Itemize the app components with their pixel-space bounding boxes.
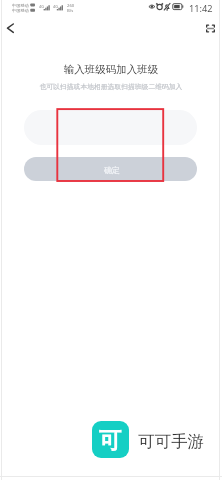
staticText: 也可以扫描或本地相册选取扫描班级二维码加入 (0, 82, 222, 91)
staticText: 确定 (104, 165, 120, 175)
button[interactable]: Back (0, 17, 22, 39)
staticText: 可 (99, 426, 122, 454)
staticText: 中国移动 (12, 8, 29, 13)
staticText: 中国移动 (12, 3, 29, 8)
staticText: 11:42 (189, 2, 213, 15)
staticText: 4G (39, 4, 44, 9)
staticText: 输入班级码加入班级 (0, 63, 222, 76)
staticText: B/s (67, 8, 74, 14)
button[interactable]: Scan QR code (199, 17, 221, 39)
button[interactable]: 确定 (24, 157, 197, 181)
staticText: 260 (67, 3, 75, 9)
button[interactable] (24, 110, 197, 145)
staticText: 可可手游 (138, 431, 204, 452)
staticText: 4G (53, 4, 58, 9)
